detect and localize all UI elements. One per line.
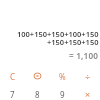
button[interactable]: 8 bbox=[25, 86, 50, 100]
button[interactable]: ÷ bbox=[75, 68, 100, 84]
staticText: 7 bbox=[10, 89, 15, 100]
button[interactable]: % bbox=[50, 68, 75, 84]
staticText: × bbox=[85, 88, 91, 100]
staticText: ÷ bbox=[85, 70, 91, 82]
button[interactable] bbox=[25, 68, 50, 84]
staticText: 8 bbox=[35, 89, 40, 100]
button[interactable]: 9 bbox=[50, 86, 75, 100]
staticText: 9 bbox=[60, 89, 65, 100]
staticText: = 1,100 bbox=[69, 50, 99, 61]
staticText: C bbox=[10, 71, 16, 82]
button[interactable]: × bbox=[75, 86, 100, 100]
staticText: % bbox=[59, 71, 66, 82]
button[interactable]: C bbox=[0, 68, 25, 84]
staticText: 100+150+150+100+150 bbox=[17, 29, 99, 39]
staticText: +150+150+150 bbox=[47, 37, 99, 47]
button[interactable]: 7 bbox=[0, 86, 25, 100]
